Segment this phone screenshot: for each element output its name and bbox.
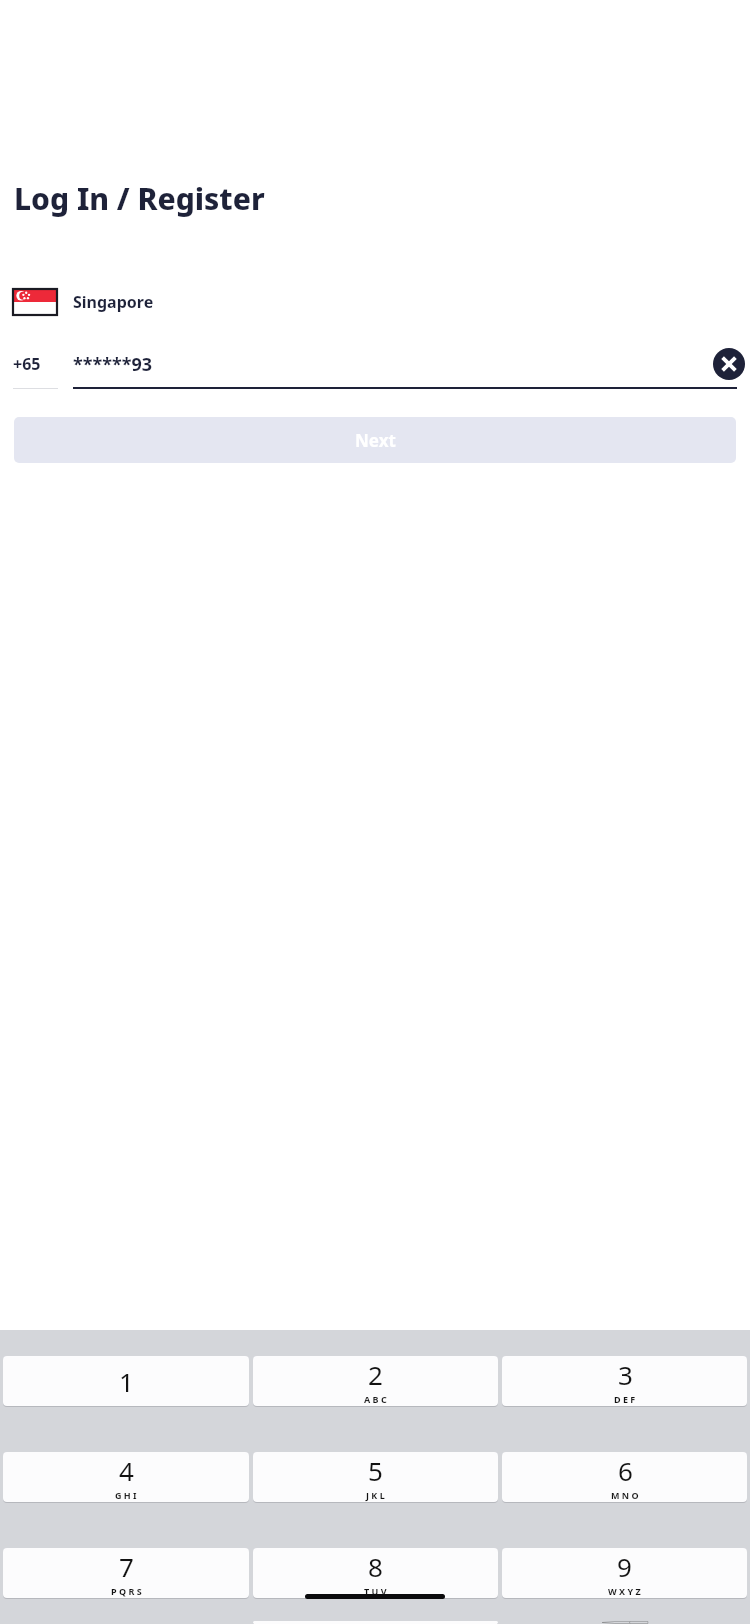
staticText: 6: [618, 1453, 633, 1488]
staticText: Next: [355, 429, 396, 452]
staticText: 3: [618, 1357, 633, 1392]
staticText: 9: [617, 1549, 632, 1584]
button[interactable]: 5: [253, 1452, 498, 1502]
button[interactable]: 6: [502, 1452, 747, 1502]
button[interactable]: 8: [253, 1548, 498, 1598]
staticText: Singapore: [73, 291, 154, 313]
staticText: ******93: [73, 352, 712, 377]
staticText: W X Y Z: [608, 1585, 641, 1597]
button[interactable]: 9: [502, 1548, 747, 1598]
button[interactable]: Clear: [712, 347, 746, 381]
staticText: 5: [368, 1453, 383, 1488]
staticText: M N O: [611, 1489, 639, 1501]
button[interactable]: 1: [3, 1356, 249, 1406]
button[interactable]: 4: [3, 1452, 249, 1502]
staticText: 1: [119, 1364, 134, 1399]
staticText: J K L: [366, 1489, 385, 1501]
staticText: Log In / Register: [14, 178, 265, 219]
staticText: D E F: [614, 1393, 636, 1405]
staticText: A B C: [364, 1393, 387, 1405]
button[interactable]: +65: [13, 353, 58, 389]
button[interactable]: Singapore: [0, 283, 750, 321]
button[interactable]: 7: [3, 1548, 249, 1598]
button[interactable]: Backspace: [502, 1621, 747, 1624]
staticText: T U V: [364, 1585, 387, 1597]
staticText: +65: [13, 353, 41, 375]
staticText: 4: [119, 1453, 134, 1488]
button[interactable]: 2: [253, 1356, 498, 1406]
staticText: G H I: [115, 1489, 137, 1501]
staticText: P Q R S: [111, 1585, 142, 1597]
button[interactable]: 3: [502, 1356, 747, 1406]
staticText: 8: [368, 1549, 383, 1584]
staticText: 2: [368, 1357, 383, 1392]
staticText: 7: [119, 1549, 134, 1584]
